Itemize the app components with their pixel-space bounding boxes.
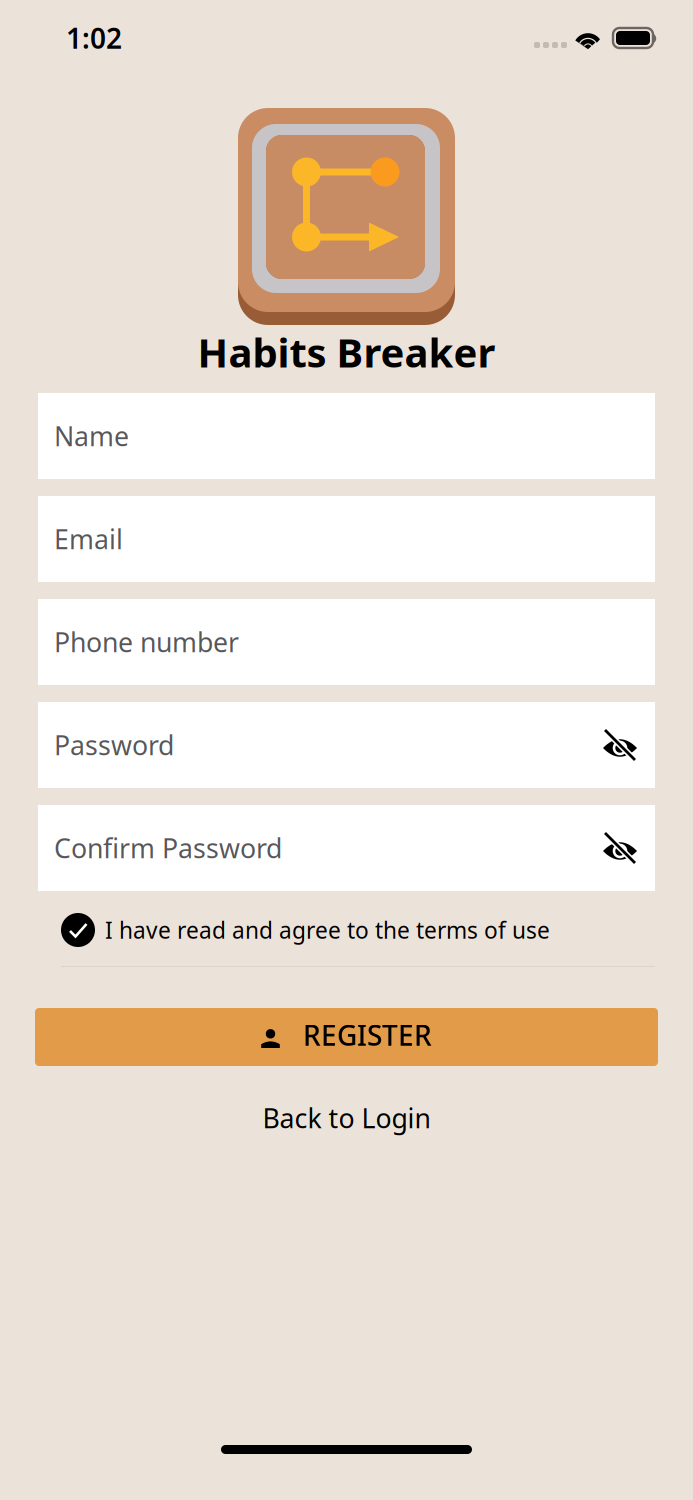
staticText: I have read and agree to the terms of us… [105,915,550,945]
button[interactable]: I have read and agree to the terms of us… [61,910,621,950]
button[interactable]: REGISTER [35,1008,658,1066]
staticText: Back to Login [262,1100,430,1136]
staticText: Email [54,521,123,557]
staticText: Habits Breaker [197,325,495,378]
staticText: Confirm Password [54,830,282,866]
staticText: Phone number [54,624,239,660]
staticText: Password [54,727,174,763]
staticText: Name [54,418,129,454]
staticText: REGISTER [303,1016,432,1054]
staticText: 1:02 [66,19,122,57]
button[interactable]: Back to Login [0,1092,693,1144]
